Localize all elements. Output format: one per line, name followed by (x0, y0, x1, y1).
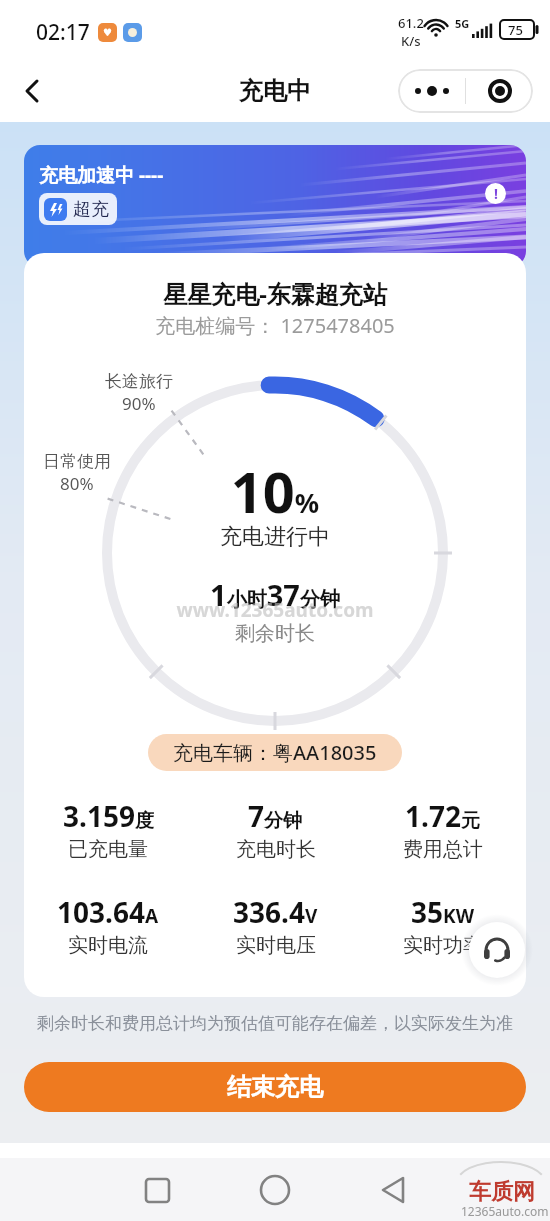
button[interactable]: ! (485, 183, 506, 204)
button[interactable] (10, 68, 56, 114)
staticText: 02:17 (36, 18, 90, 47)
button[interactable]: 充电加速中 ---- (24, 145, 526, 267)
staticText: 10% (24, 453, 526, 529)
staticText: 3.159度 (63, 797, 154, 835)
staticText: 费用总计 (403, 837, 483, 862)
staticText: 61.2 (398, 14, 424, 32)
staticText: K/s (401, 32, 421, 50)
staticText: 剩余时长 (24, 621, 526, 646)
staticText: 充电加速中 ---- (39, 162, 164, 188)
staticText: 已充电量 (68, 837, 148, 862)
button[interactable] (466, 69, 533, 113)
staticText: 7分钟 (248, 797, 303, 835)
staticText: 1.72元 (405, 797, 480, 835)
staticText: 剩余时长和费用总计均为预估值可能存在偏差，以实际发生为准 (0, 1013, 550, 1034)
staticText: 75 (508, 21, 523, 39)
staticText: 103.64A (57, 893, 159, 931)
staticText: 超充 (73, 198, 109, 221)
button[interactable] (469, 922, 525, 978)
staticText: 车质网 (469, 1178, 535, 1206)
button[interactable] (360, 1160, 420, 1220)
staticText: 结束充电 (227, 1072, 323, 1102)
staticText: 5G (455, 16, 470, 31)
staticText: 实时电压 (236, 933, 316, 958)
staticText: 充电时长 (236, 837, 316, 862)
button[interactable]: 结束充电 (24, 1062, 526, 1112)
staticText: 充电桩编号： 1275478405 (24, 312, 526, 339)
staticText: 充电车辆：粤AA18035 (173, 739, 377, 766)
staticText: 80% (60, 472, 94, 495)
staticText: 实时电流 (68, 933, 148, 958)
staticText: 12365auto.com (461, 1203, 549, 1219)
staticText: 90% (122, 392, 156, 415)
button[interactable] (245, 1160, 305, 1220)
staticText: 充电中 (239, 76, 311, 106)
staticText: 日常使用 (43, 451, 111, 472)
staticText: 35KW (411, 893, 475, 931)
staticText: 336.4V (233, 893, 318, 931)
staticText: ♥ (103, 27, 112, 39)
staticText: 星星充电-东霖超充站 (24, 277, 526, 310)
staticText: www.12365auto.com (24, 597, 526, 623)
staticText: 实时功率 (403, 933, 483, 958)
button[interactable] (398, 69, 465, 113)
staticText: ! (494, 184, 498, 203)
button[interactable] (128, 1160, 188, 1220)
button[interactable]: 充电车辆：粤AA18035 (148, 734, 402, 771)
staticText: 充电进行中 (24, 523, 526, 551)
staticText: 长途旅行 (105, 371, 173, 392)
staticText: 1小时37分钟 (24, 575, 526, 614)
